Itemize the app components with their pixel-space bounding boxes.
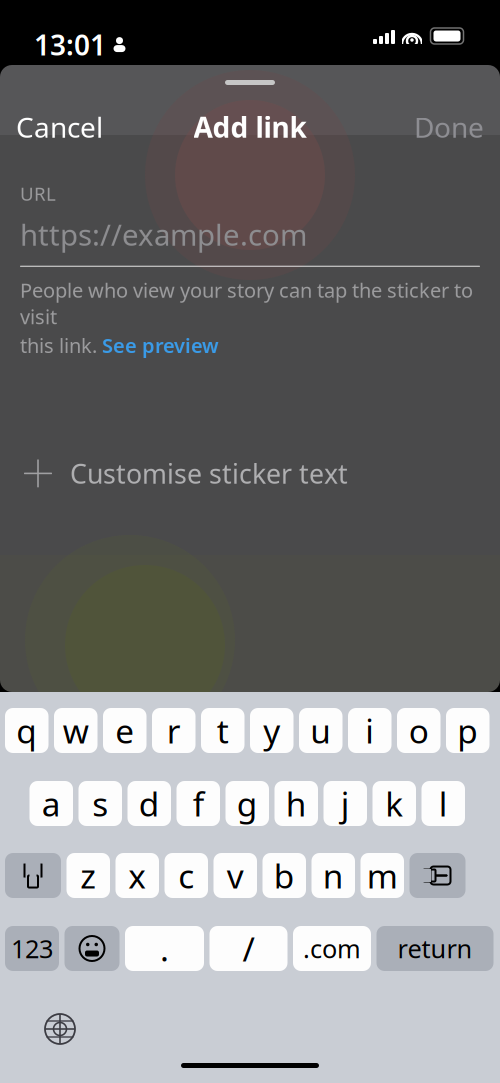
staticText: j <box>341 781 350 826</box>
staticText: / <box>242 926 254 971</box>
staticText: h <box>286 781 307 826</box>
staticText: i <box>365 708 374 753</box>
staticText: y <box>263 708 280 753</box>
staticText: q <box>16 708 37 753</box>
button[interactable]: a <box>29 781 73 826</box>
staticText: 123 <box>11 932 53 965</box>
button[interactable]: n <box>311 853 355 898</box>
staticText: .com <box>303 932 361 965</box>
button[interactable]: i <box>348 708 391 753</box>
button[interactable]: f <box>176 781 220 826</box>
staticText: b <box>274 853 295 898</box>
staticText: z <box>80 853 96 898</box>
button[interactable]: j <box>323 781 367 826</box>
button[interactable]: r <box>152 708 195 753</box>
button[interactable]: Cancel <box>0 98 119 156</box>
staticText: this link. <box>20 332 102 358</box>
staticText: k <box>385 781 403 826</box>
button[interactable]: Delete <box>409 853 465 898</box>
staticText: a <box>42 781 61 826</box>
button[interactable]: y <box>250 708 293 753</box>
button[interactable]: g <box>225 781 269 826</box>
staticText: n <box>323 853 344 898</box>
button[interactable]: 123 <box>5 926 59 971</box>
button[interactable]: Customise sticker text <box>0 447 500 499</box>
button[interactable]: . <box>125 926 204 971</box>
button[interactable]: t <box>201 708 244 753</box>
staticText: URL <box>20 181 56 206</box>
staticText: t <box>217 708 229 753</box>
button[interactable]: Done <box>398 98 500 156</box>
staticText: Cancel <box>16 108 103 146</box>
button[interactable]: c <box>164 853 208 898</box>
staticText: l <box>439 781 448 826</box>
button[interactable]: z <box>66 853 110 898</box>
staticText: https://example.com <box>20 215 307 254</box>
staticText: Customise sticker text <box>70 456 348 491</box>
button[interactable]: .com <box>293 926 371 971</box>
button[interactable]: s <box>78 781 122 826</box>
staticText: w <box>63 708 89 753</box>
staticText: e <box>115 708 134 753</box>
staticText: Done <box>414 108 484 146</box>
staticText: . <box>160 926 169 971</box>
staticText: x <box>128 853 146 898</box>
button[interactable]: See preview <box>102 332 219 358</box>
button[interactable]: o <box>397 708 440 753</box>
staticText: People who view your story can tap the s… <box>20 277 473 330</box>
button[interactable]: Emoji <box>64 926 119 971</box>
button[interactable]: Next keyboard <box>37 1006 83 1052</box>
staticText: c <box>178 853 194 898</box>
button[interactable]: v <box>213 853 257 898</box>
button[interactable]: u <box>299 708 342 753</box>
button[interactable]: q <box>5 708 48 753</box>
button[interactable]: b <box>262 853 306 898</box>
button[interactable]: x <box>115 853 159 898</box>
button[interactable]: e <box>103 708 146 753</box>
button[interactable]: d <box>127 781 171 826</box>
staticText: 13:01 <box>34 26 106 63</box>
staticText: g <box>237 781 258 826</box>
staticText: r <box>167 708 181 753</box>
staticText: d <box>139 781 160 826</box>
staticText: s <box>92 781 108 826</box>
button[interactable]: m <box>360 853 404 898</box>
staticText: return <box>397 932 472 965</box>
button[interactable]: / <box>209 926 287 971</box>
button[interactable]: w <box>54 708 97 753</box>
button[interactable]: return <box>376 926 493 971</box>
staticText: o <box>409 708 429 753</box>
button[interactable]: h <box>274 781 318 826</box>
staticText: p <box>457 708 478 753</box>
staticText: See preview <box>102 332 219 358</box>
staticText: Add link <box>193 108 306 146</box>
staticText: u <box>310 708 331 753</box>
button[interactable]: Shift <box>5 853 61 898</box>
button[interactable]: p <box>446 708 489 753</box>
button[interactable]: l <box>421 781 465 826</box>
button[interactable]: k <box>372 781 416 826</box>
staticText: v <box>227 853 244 898</box>
staticText: m <box>367 853 398 898</box>
staticText: f <box>193 781 204 826</box>
